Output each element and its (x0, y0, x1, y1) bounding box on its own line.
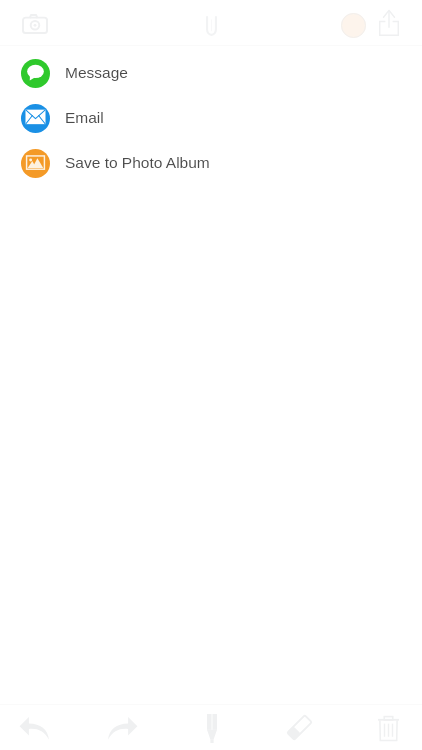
button[interactable]: Camera (12, 1, 57, 46)
button[interactable]: Delete (366, 704, 411, 750)
button[interactable]: Eraser (277, 704, 322, 750)
staticText: Save to Photo Album (65, 154, 210, 171)
button[interactable]: Message (0, 51, 422, 96)
button[interactable]: Redo (100, 704, 145, 750)
button[interactable]: Marker (189, 704, 234, 750)
button[interactable]: Undo (11, 704, 56, 750)
button[interactable]: Save to Photo Album (0, 141, 422, 186)
staticText: Message (65, 64, 128, 81)
button[interactable]: Email (0, 96, 422, 141)
button[interactable]: Share (366, 0, 411, 45)
staticText: Email (65, 109, 104, 126)
button[interactable]: Brush colour (331, 3, 376, 48)
